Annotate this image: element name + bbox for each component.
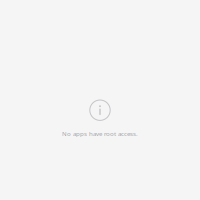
staticText: No apps have root access. [62, 129, 138, 138]
